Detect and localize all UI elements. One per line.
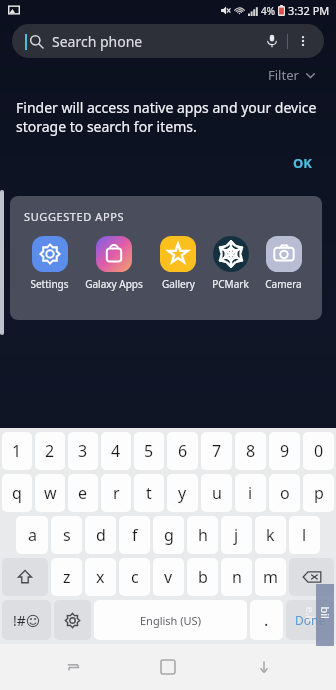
button[interactable]: 0 [303,432,334,470]
staticText: 2 [45,440,55,462]
button[interactable]: . [250,600,283,640]
staticText: u [212,482,222,504]
staticText: !#☺ [13,611,41,630]
staticText: Settings [30,277,69,291]
button[interactable]: w [35,474,65,512]
staticText: m [263,566,278,588]
button[interactable]: d [85,516,116,554]
button[interactable]: Hide keyboard [241,644,287,690]
button[interactable]: s [51,516,82,554]
button[interactable]: z [51,558,82,596]
button[interactable]: Backspace [289,558,334,596]
staticText: mobile.ir [302,606,336,624]
button[interactable]: x [85,558,116,596]
staticText: s [63,524,71,546]
staticText: English (US) [140,613,201,628]
button[interactable]: 5 [134,432,164,470]
button[interactable]: l [289,516,320,554]
button[interactable]: y [167,474,198,512]
staticText: 8 [246,440,256,462]
button[interactable]: Gallery [158,236,198,291]
staticText: g [164,524,174,546]
button[interactable]: u [201,474,232,512]
button[interactable]: Done [286,600,334,640]
staticText: h [198,524,208,546]
button[interactable]: English (US) [94,600,247,640]
button[interactable]: 7 [201,432,232,470]
staticText: 0 [314,440,324,462]
button[interactable]: 9 [269,432,300,470]
button[interactable]: b [187,558,218,596]
staticText: 3 [78,440,88,462]
button[interactable]: i [235,474,266,512]
staticText: n [232,566,242,588]
button[interactable]: Voice search [261,30,283,52]
button[interactable]: 4 [101,432,131,470]
staticText: f [132,524,138,546]
button[interactable]: c [119,558,150,596]
staticText: PCMark [212,277,249,291]
staticText: Galaxy Apps [85,277,143,291]
button[interactable]: Search phone [12,24,324,58]
staticText: SUGGESTED APPS [24,209,125,224]
button[interactable]: Keyboard settings [54,600,91,640]
button[interactable]: Recents [50,644,96,690]
staticText: Finder will access native apps and your … [16,98,320,136]
staticText: Search phone [52,32,143,51]
button[interactable]: p [303,474,334,512]
staticText: e [78,482,88,504]
staticText: y [178,482,187,504]
button[interactable]: o [269,474,300,512]
button[interactable]: f [119,516,150,554]
staticText: r [113,482,120,504]
staticText: j [234,524,239,546]
button[interactable]: !#☺ [2,600,51,640]
button[interactable]: h [187,516,218,554]
staticText: w [44,482,57,504]
button[interactable]: g [153,516,184,554]
button[interactable]: 6 [167,432,198,470]
button[interactable]: e [68,474,98,512]
button[interactable]: More options [292,30,314,52]
staticText: 3:32 PM [288,3,330,18]
button[interactable]: t [134,474,164,512]
staticText: b [198,566,208,588]
button[interactable]: Home [145,644,191,690]
button[interactable]: r [101,474,131,512]
staticText: l [302,524,307,546]
button[interactable]: Settings [28,236,71,291]
button[interactable]: Galaxy Apps [83,236,145,291]
staticText: v [164,566,173,588]
staticText: c [131,566,139,588]
button[interactable]: a [16,516,48,554]
staticText: . [264,609,269,631]
staticText: o [280,482,290,504]
staticText: Camera [265,277,302,291]
staticText: Filter [268,66,299,84]
button[interactable]: m [255,558,286,596]
staticText: 5 [144,440,154,462]
button[interactable]: Camera [263,236,304,291]
button[interactable]: 1 [2,432,32,470]
staticText: Gallery [162,277,195,291]
button[interactable]: 8 [235,432,266,470]
button[interactable]: Filter [264,62,320,88]
staticText: 4 [111,440,121,462]
staticText: d [96,524,106,546]
button[interactable]: k [255,516,286,554]
button[interactable]: PCMark [210,236,251,291]
button[interactable]: q [2,474,32,512]
button[interactable]: v [153,558,184,596]
button[interactable]: n [221,558,252,596]
staticText: OK [293,154,312,172]
button[interactable]: 3 [68,432,98,470]
button[interactable]: j [221,516,252,554]
staticText: q [12,482,22,504]
staticText: Done [295,612,326,628]
button[interactable]: 2 [35,432,65,470]
staticText: 6 [178,440,188,462]
button[interactable]: OK [285,150,320,176]
staticText: 1 [12,440,22,462]
staticText: a [28,524,37,546]
button[interactable]: Shift [2,558,48,596]
